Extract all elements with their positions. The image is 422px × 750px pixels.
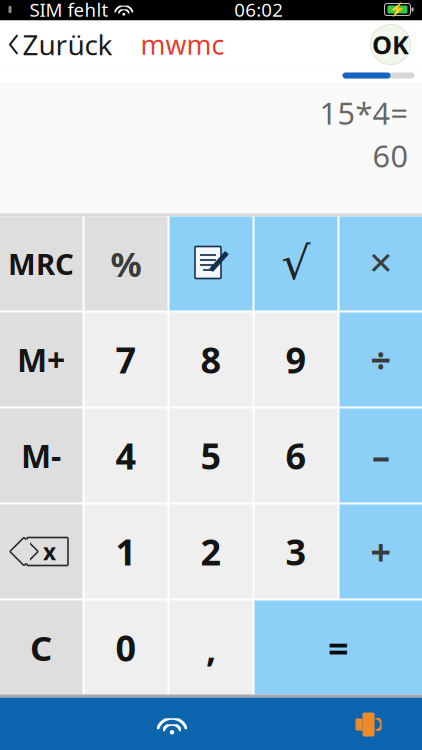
button[interactable]: 7 bbox=[84, 312, 167, 406]
staticText: 60 bbox=[372, 135, 408, 176]
staticText: – bbox=[372, 432, 390, 479]
button[interactable]: Square root bbox=[254, 216, 337, 310]
button[interactable]: M- bbox=[0, 408, 82, 502]
button[interactable]: Wi-Fi bbox=[147, 703, 197, 746]
button[interactable]: – bbox=[339, 408, 422, 502]
staticText: ⚡ bbox=[389, 2, 406, 17]
staticText: 6 bbox=[285, 432, 306, 479]
button[interactable]: = bbox=[254, 600, 422, 694]
staticText: 8 bbox=[200, 336, 221, 383]
staticText: MRC bbox=[8, 244, 74, 283]
staticText: 9 bbox=[285, 336, 306, 383]
staticText: 3 bbox=[285, 528, 306, 575]
button[interactable]: 8 bbox=[169, 312, 252, 406]
staticText: + bbox=[370, 528, 391, 575]
staticText: ✕ bbox=[368, 246, 394, 281]
staticText: M- bbox=[21, 434, 61, 477]
staticText: SIM fehlt bbox=[29, 0, 108, 22]
button[interactable]: Sound bbox=[344, 702, 392, 746]
button[interactable]: MRC bbox=[0, 216, 82, 310]
button[interactable]: 1 bbox=[84, 504, 167, 598]
staticText: x bbox=[43, 536, 56, 566]
staticText: 5 bbox=[200, 432, 221, 479]
staticText: = bbox=[328, 624, 349, 671]
staticText: 0 bbox=[115, 624, 136, 671]
button[interactable]: Zurück bbox=[0, 18, 118, 71]
button[interactable]: 9 bbox=[254, 312, 337, 406]
staticText: 06:02 bbox=[234, 0, 283, 22]
button[interactable]: Notes bbox=[169, 216, 252, 310]
staticText: 15*4= bbox=[319, 92, 408, 133]
button[interactable]: Backspace bbox=[0, 504, 82, 598]
staticText: 7 bbox=[115, 336, 136, 383]
button[interactable]: % bbox=[84, 216, 167, 310]
staticText: Zurück bbox=[22, 26, 112, 63]
button[interactable]: + bbox=[339, 504, 422, 598]
button[interactable]: ÷ bbox=[339, 312, 422, 406]
button[interactable]: 4 bbox=[84, 408, 167, 502]
button[interactable]: 5 bbox=[169, 408, 252, 502]
button[interactable]: 3 bbox=[254, 504, 337, 598]
staticText: , bbox=[206, 624, 216, 671]
staticText: M+ bbox=[17, 338, 65, 381]
staticText: ÷ bbox=[370, 336, 391, 383]
button[interactable]: 2 bbox=[169, 504, 252, 598]
button[interactable]: M+ bbox=[0, 312, 82, 406]
staticText: % bbox=[110, 240, 141, 286]
button[interactable]: ✕ bbox=[339, 216, 422, 310]
staticText: OK bbox=[372, 28, 409, 61]
staticText: √ bbox=[281, 238, 310, 289]
staticText: 1 bbox=[115, 528, 136, 575]
staticText: 4 bbox=[115, 432, 136, 479]
staticText: 2 bbox=[200, 528, 221, 575]
staticText: mwmc bbox=[140, 27, 224, 62]
button[interactable]: 0 bbox=[84, 600, 167, 694]
button[interactable]: , bbox=[169, 600, 252, 694]
button[interactable]: 6 bbox=[254, 408, 337, 502]
staticText: C bbox=[30, 624, 52, 670]
button[interactable]: C bbox=[0, 600, 82, 694]
button[interactable]: OK bbox=[366, 20, 414, 68]
